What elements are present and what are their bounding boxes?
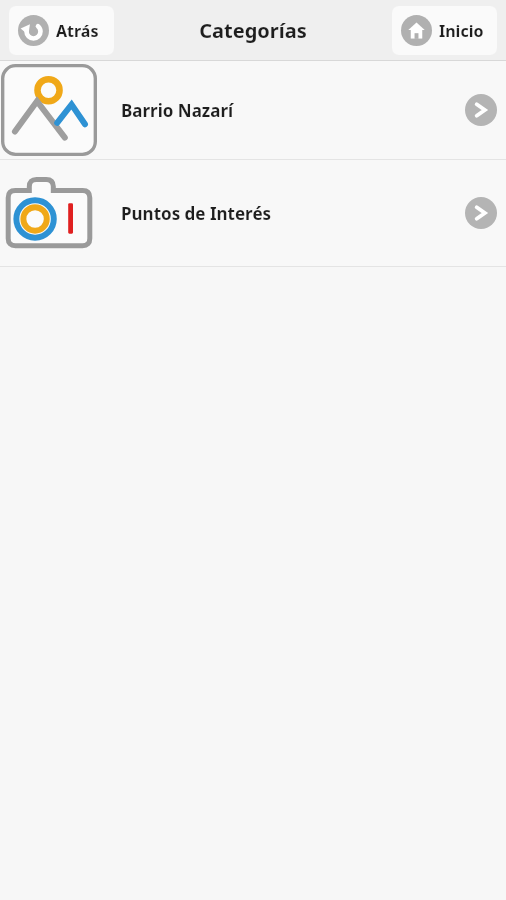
button[interactable]: Puntos de Interés bbox=[0, 160, 506, 266]
button[interactable]: Barrio Nazarí bbox=[0, 61, 506, 159]
staticText: Barrio Nazarí bbox=[121, 99, 465, 122]
staticText: Atrás bbox=[56, 20, 99, 42]
staticText: Inicio bbox=[439, 20, 484, 42]
staticText: Categorías bbox=[199, 17, 307, 44]
staticText: Puntos de Interés bbox=[121, 202, 465, 225]
other: Abrir Barrio Nazarí bbox=[465, 94, 497, 126]
button[interactable]: Atrás bbox=[9, 6, 114, 55]
other: Abrir Puntos de Interés bbox=[465, 197, 497, 229]
button[interactable]: Inicio bbox=[392, 6, 497, 55]
